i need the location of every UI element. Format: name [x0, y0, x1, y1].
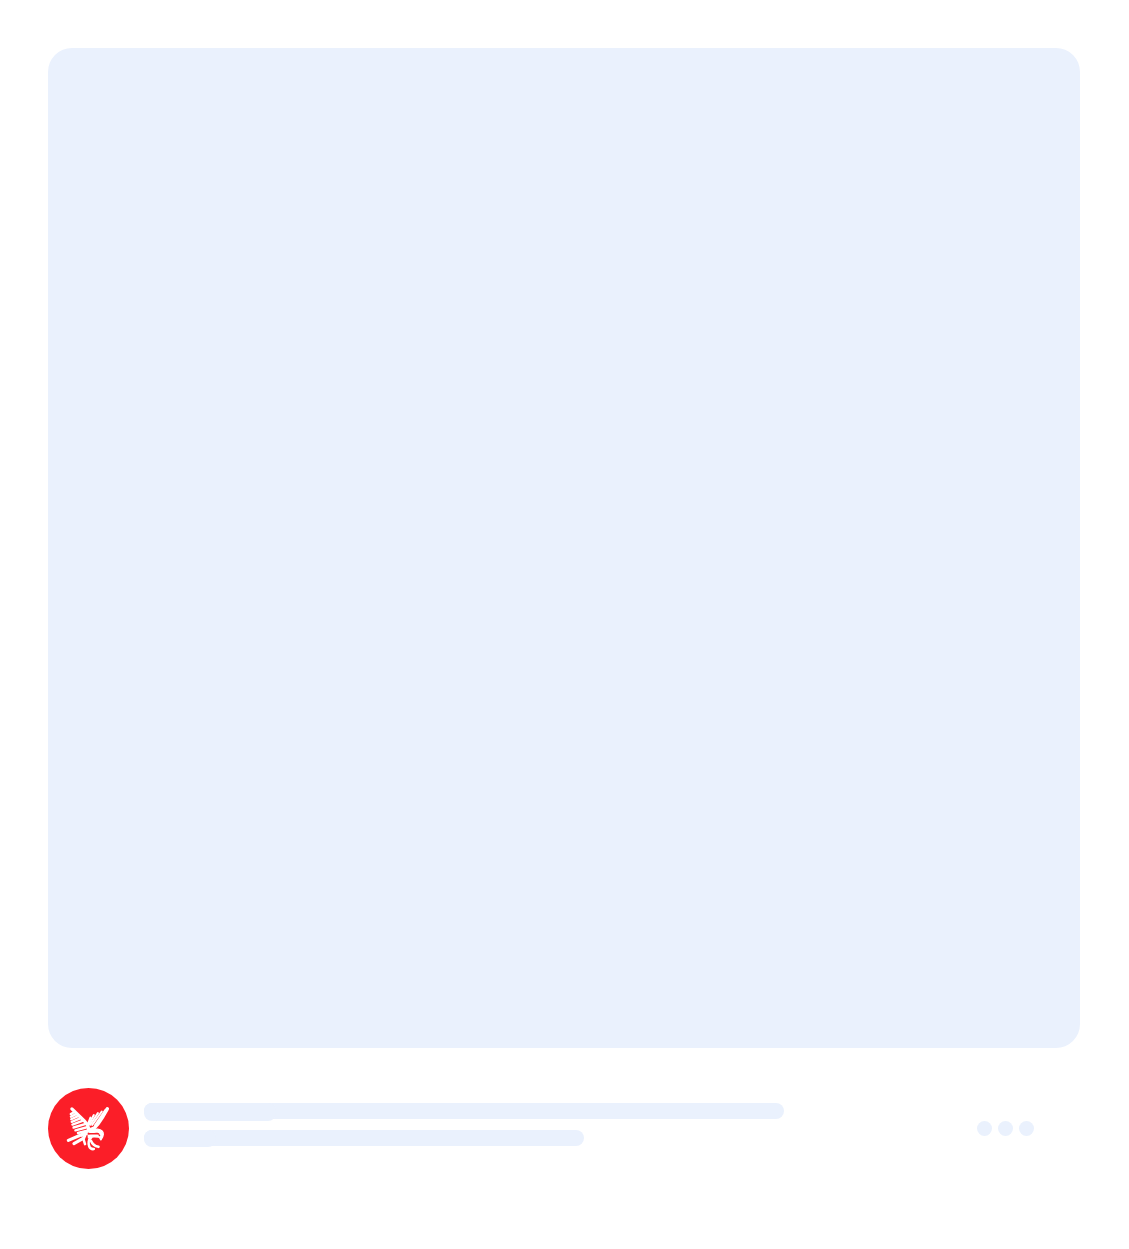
- button[interactable]: Open profile: [48, 1088, 129, 1169]
- button[interactable]: More options: [977, 1121, 1034, 1136]
